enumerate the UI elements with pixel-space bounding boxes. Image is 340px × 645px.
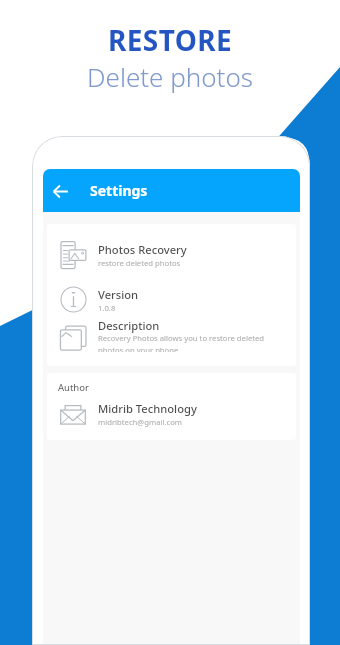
staticText: Author [58, 381, 89, 394]
staticText: restore deleted photos [98, 258, 181, 268]
button[interactable]: Midrib Technology [47, 397, 296, 431]
staticText: Description [98, 318, 160, 333]
staticText: Version [98, 287, 139, 302]
staticText: 1.0.8 [98, 303, 116, 313]
staticText: Delete photos [0, 59, 340, 94]
staticText: Settings [90, 181, 148, 200]
staticText: Recovery Photos allows you to restore de… [98, 333, 265, 352]
button[interactable]: Version [47, 277, 296, 321]
button[interactable]: Description [47, 321, 296, 355]
button[interactable]: Photos Recovery [47, 233, 296, 277]
staticText: Photos Recovery [98, 242, 187, 257]
staticText: midribtech@gmail.com [98, 417, 183, 427]
staticText: RESTORE [0, 21, 340, 59]
staticText: Midrib Technology [98, 401, 197, 416]
button[interactable]: Back [47, 178, 73, 204]
